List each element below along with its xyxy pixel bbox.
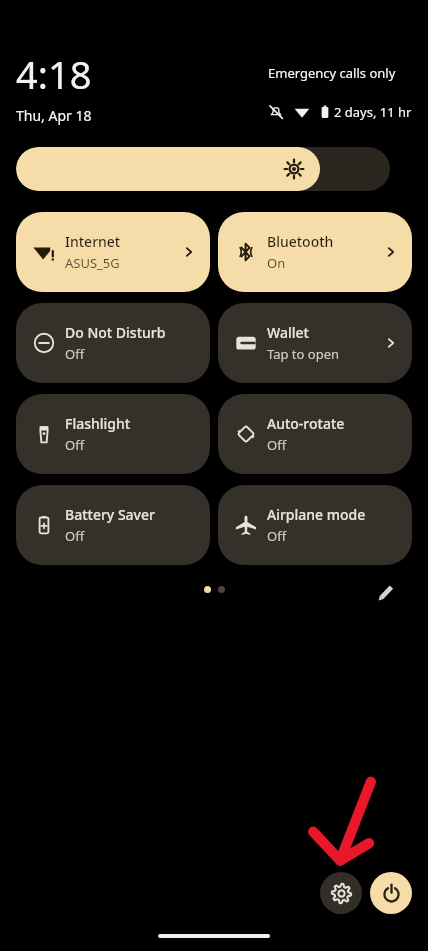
button[interactable]: Edit tiles	[370, 576, 402, 608]
button[interactable]: Settings	[320, 872, 362, 914]
staticText: Battery Saver	[65, 505, 155, 524]
staticText: ASUS_5G	[65, 254, 120, 272]
staticText: 2 days, 11 hr	[334, 103, 412, 121]
staticText: Airplane mode	[267, 505, 366, 524]
button[interactable]: Auto-rotate	[218, 394, 412, 474]
staticText: Emergency calls only	[268, 64, 396, 82]
staticText: Off	[267, 527, 287, 545]
staticText: Thu, Apr 18	[16, 106, 92, 125]
button[interactable]: Airplane mode	[218, 485, 412, 565]
staticText: On	[267, 254, 286, 272]
staticText: Off	[65, 436, 85, 454]
button[interactable]: Bluetooth	[218, 212, 412, 292]
staticText: Off	[267, 436, 287, 454]
staticText: Wallet	[267, 323, 309, 342]
staticText: Bluetooth	[267, 232, 334, 251]
button[interactable]: Wallet	[218, 303, 412, 383]
staticText: Do Not Disturb	[65, 323, 166, 342]
staticText: Flashlight	[65, 414, 131, 433]
staticText: 4:18	[16, 48, 92, 100]
button[interactable]: Power	[370, 872, 412, 914]
staticText: Off	[65, 345, 85, 363]
button[interactable]: Do Not Disturb	[16, 303, 210, 383]
button[interactable]: Battery Saver	[16, 485, 210, 565]
button[interactable]: Brightness	[16, 147, 390, 191]
button[interactable]: Internet	[16, 212, 210, 292]
staticText: Auto-rotate	[267, 414, 345, 433]
staticText: Tap to open	[267, 345, 340, 363]
staticText: Off	[65, 527, 85, 545]
button[interactable]: Flashlight	[16, 394, 210, 474]
staticText: Internet	[65, 232, 121, 251]
